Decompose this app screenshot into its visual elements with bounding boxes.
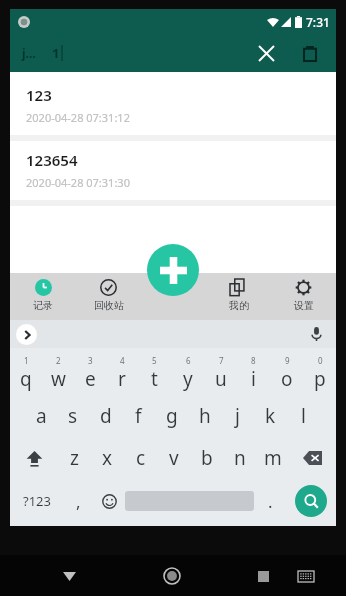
staticText: ?123 <box>23 492 51 510</box>
staticText: 1 <box>52 44 60 62</box>
staticText: v <box>169 445 179 471</box>
button[interactable]: 2 <box>42 351 74 395</box>
staticText: j <box>235 403 240 429</box>
button[interactable]: d <box>89 395 122 437</box>
button[interactable]: 记录 <box>10 273 76 320</box>
staticText: 记录 <box>33 299 53 312</box>
button[interactable]: f <box>122 395 155 437</box>
staticText: n <box>234 445 246 471</box>
button[interactable]: s <box>57 395 89 437</box>
staticText: 回收站 <box>94 299 124 312</box>
staticText: 6 <box>186 355 191 366</box>
button[interactable]: ?123 <box>10 479 64 523</box>
staticText: h <box>199 403 211 429</box>
button[interactable]: x <box>91 437 124 479</box>
staticText: u <box>215 366 227 392</box>
staticText: 2020-04-28 07:31:12 <box>26 110 130 125</box>
button[interactable]: Backspace <box>289 437 336 479</box>
staticText: r <box>118 366 126 392</box>
staticText: w <box>51 366 66 392</box>
button[interactable]: More suggestions <box>16 324 37 345</box>
button[interactable]: Search <box>295 485 327 517</box>
staticText: z <box>70 445 79 471</box>
staticText: 0 <box>318 355 323 366</box>
staticText: e <box>85 366 96 392</box>
button[interactable]: Clear search <box>250 37 282 69</box>
staticText: x <box>102 445 113 471</box>
button[interactable]: 8 <box>237 351 270 395</box>
button[interactable]: j <box>221 395 254 437</box>
staticText: . <box>268 490 273 513</box>
staticText: c <box>136 445 146 471</box>
staticText: o <box>281 366 293 392</box>
button[interactable]: Voice input <box>304 322 328 346</box>
button[interactable]: n <box>223 437 256 479</box>
button[interactable]: Emoji <box>93 479 125 523</box>
staticText: 123654 <box>26 150 78 170</box>
staticText: m <box>264 445 282 471</box>
button[interactable]: 4 <box>106 351 138 395</box>
staticText: 7 <box>219 355 224 366</box>
button[interactable]: 123654 <box>10 141 336 200</box>
staticText: k <box>265 403 276 429</box>
button[interactable]: 0 <box>303 351 336 395</box>
button[interactable]: c <box>124 437 157 479</box>
button[interactable]: Add note <box>147 244 199 296</box>
staticText: l <box>301 403 306 429</box>
staticText: g <box>166 403 178 429</box>
staticText: 2 <box>56 355 61 366</box>
staticText: 5 <box>152 355 157 366</box>
button[interactable]: 3 <box>74 351 106 395</box>
staticText: 4 <box>120 355 125 366</box>
staticText: , <box>76 490 81 513</box>
button[interactable]: 1 <box>10 351 42 395</box>
staticText: 设置 <box>294 299 314 312</box>
button[interactable]: 设置 <box>271 273 336 320</box>
staticText: 3 <box>88 355 93 366</box>
staticText: d <box>100 403 112 429</box>
staticText: b <box>201 445 213 471</box>
button[interactable]: 我的 <box>206 273 271 320</box>
staticText: 9 <box>285 355 290 366</box>
button[interactable]: 回收站 <box>76 273 141 320</box>
button[interactable]: , <box>64 479 93 523</box>
staticText: j… <box>22 45 36 61</box>
button[interactable]: 123 <box>10 76 336 135</box>
staticText: 8 <box>251 355 256 366</box>
button[interactable]: . <box>254 479 286 523</box>
staticText: q <box>20 366 32 392</box>
staticText: y <box>183 366 193 392</box>
staticText: a <box>36 403 47 429</box>
staticText: i <box>251 366 256 392</box>
button[interactable]: a <box>25 395 57 437</box>
staticText: 123 <box>26 85 52 105</box>
button[interactable]: h <box>188 395 221 437</box>
button[interactable]: b <box>190 437 223 479</box>
button[interactable]: Shift <box>10 437 58 479</box>
staticText: s <box>68 403 78 429</box>
staticText: 7:31 <box>306 14 330 30</box>
button[interactable]: v <box>157 437 190 479</box>
button[interactable]: 9 <box>270 351 303 395</box>
button[interactable]: Back <box>54 561 84 591</box>
staticText: p <box>314 366 326 392</box>
button[interactable]: m <box>256 437 289 479</box>
button[interactable]: 5 <box>138 351 171 395</box>
button[interactable]: Home <box>157 561 187 591</box>
staticText: 1 <box>24 355 29 366</box>
staticText: 2020-04-28 07:31:30 <box>26 175 130 190</box>
button[interactable]: 6 <box>171 351 204 395</box>
button[interactable]: Switch keyboard <box>293 563 319 589</box>
button[interactable]: k <box>254 395 287 437</box>
button[interactable]: Recent apps <box>250 563 276 589</box>
button[interactable]: 7 <box>204 351 237 395</box>
staticText: t <box>151 366 158 392</box>
button[interactable]: z <box>58 437 91 479</box>
button[interactable]: g <box>155 395 188 437</box>
button[interactable]: Delete <box>294 37 326 69</box>
button[interactable]: l <box>287 395 320 437</box>
staticText: 我的 <box>229 299 249 312</box>
staticText: f <box>135 403 142 429</box>
